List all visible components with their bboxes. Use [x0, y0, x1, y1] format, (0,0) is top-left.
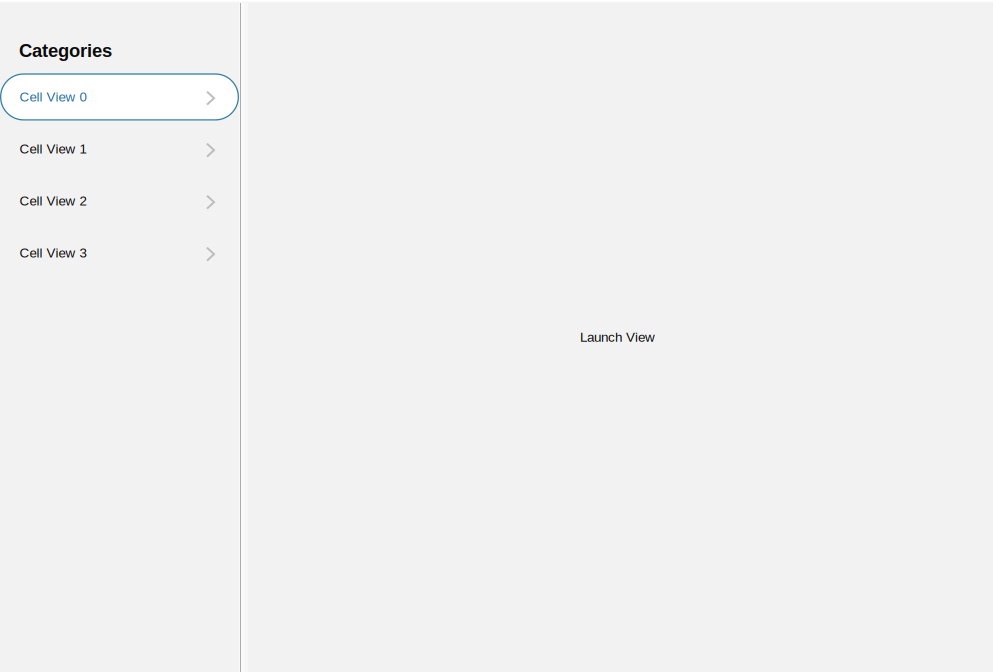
- button[interactable]: Cell View 2: [0, 175, 239, 227]
- button[interactable]: Cell View 1: [0, 123, 239, 175]
- staticText: Categories: [19, 40, 112, 61]
- staticText: Cell View 1: [19, 141, 86, 156]
- button[interactable]: Cell View 3: [0, 227, 239, 279]
- button[interactable]: Cell View 0: [0, 71, 239, 123]
- staticText: Launch View: [580, 329, 655, 344]
- staticText: Cell View 0: [19, 89, 86, 104]
- staticText: Cell View 3: [19, 245, 86, 260]
- staticText: Cell View 2: [19, 193, 86, 208]
